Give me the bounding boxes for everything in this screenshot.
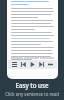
- button[interactable]: Settings: [47, 61, 54, 68]
- button[interactable]: Easy to use: [3, 81, 61, 89]
- staticText: Click any sentence to read: [5, 91, 59, 97]
- button[interactable]: Previous sentence: [20, 61, 27, 68]
- button[interactable]: Next sentence: [38, 61, 45, 68]
- button[interactable]: Play: [29, 61, 36, 68]
- staticText: Easy to use: [15, 81, 49, 89]
- button[interactable]: Table of contents: [11, 61, 18, 68]
